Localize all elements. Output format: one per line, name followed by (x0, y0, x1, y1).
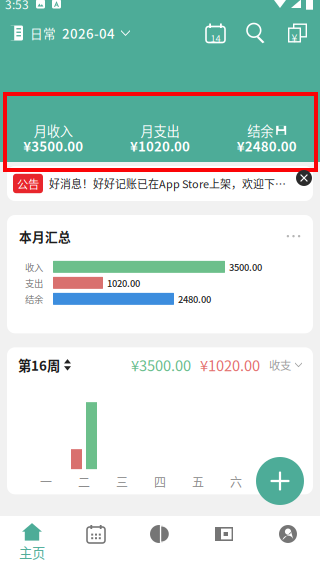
staticText: 支出 (25, 276, 43, 290)
staticText: 二 (78, 473, 90, 491)
staticText: ¥ (291, 30, 297, 45)
button[interactable]: 主页 (0, 516, 64, 568)
staticText: 月支出 (140, 121, 179, 140)
staticText: 2026-04 (62, 23, 115, 43)
staticText: 结余 (247, 121, 273, 140)
button[interactable]: 日常 (10, 17, 130, 49)
staticText: 收入 (25, 260, 43, 274)
staticText: 本月汇总 (19, 227, 71, 245)
staticText: 四 (154, 473, 166, 491)
staticText: 月收入 (34, 121, 73, 140)
staticText: 一 (40, 473, 52, 491)
button[interactable]: Accounts (288, 18, 307, 47)
button[interactable] (256, 516, 320, 568)
button[interactable] (64, 516, 128, 568)
staticText: 公告 (17, 175, 39, 192)
staticText: 2480.00 (178, 292, 211, 306)
staticText: ¥3500.00 (23, 136, 83, 155)
staticText: 第16周 (18, 355, 60, 374)
staticText: ¥1020.00 (200, 354, 260, 375)
staticText: 三 (116, 473, 128, 491)
staticText: ¥1020.00 (130, 136, 190, 155)
staticText: 结余 (25, 292, 43, 306)
staticText: 日常 (30, 24, 56, 42)
staticText: 好消息！好好记账已在App Store上架，欢迎下载使… (49, 176, 295, 191)
staticText: ¥2480.00 (237, 136, 297, 155)
button[interactable] (128, 516, 192, 568)
staticText: 1020.00 (107, 276, 140, 290)
button[interactable] (192, 516, 256, 568)
staticText: 六 (230, 473, 242, 491)
button[interactable]: 收支 (269, 357, 302, 373)
staticText: 收支 (269, 357, 291, 373)
staticText: 3500.00 (229, 260, 262, 274)
staticText: ¥3500.00 (131, 354, 191, 375)
button[interactable]: Calendar (206, 18, 225, 47)
button[interactable]: Search (247, 18, 266, 47)
button[interactable]: More (285, 231, 302, 241)
staticText: 五 (192, 473, 204, 491)
staticText: 3:53 (5, 0, 29, 13)
staticText: 14 (210, 31, 220, 45)
button[interactable]: Add record (256, 457, 304, 505)
staticText: 主页 (19, 543, 45, 562)
